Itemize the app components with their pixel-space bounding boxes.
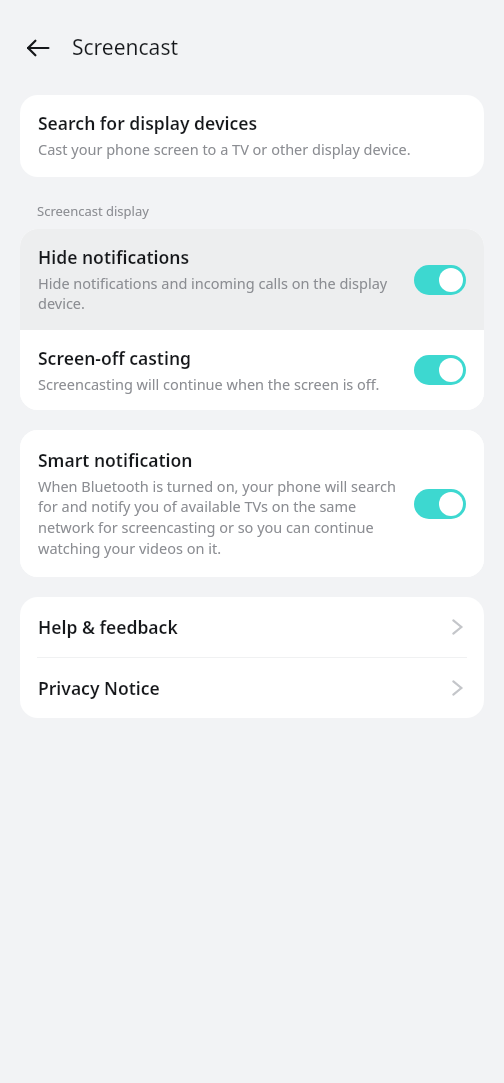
staticText: Smart notification (38, 448, 193, 472)
staticText: Privacy Notice (38, 676, 451, 700)
staticText: When Bluetooth is turned on, your phone … (38, 476, 400, 559)
button[interactable]: Help & feedback (20, 597, 484, 657)
staticText: Search for display devices (38, 111, 258, 135)
button[interactable]: Screen-off casting (20, 330, 484, 410)
button[interactable]: Privacy Notice (20, 658, 484, 718)
button[interactable]: Smart notification (20, 430, 484, 577)
staticText: Help & feedback (38, 615, 451, 639)
button[interactable]: Back (18, 28, 58, 68)
staticText: Screencasting will continue when the scr… (38, 374, 380, 394)
button[interactable]: Toggle (414, 355, 466, 385)
button[interactable]: Toggle (414, 489, 466, 519)
staticText: Screencast display (37, 202, 149, 220)
button[interactable]: Hide notifications (20, 229, 484, 330)
staticText: Cast your phone screen to a TV or other … (38, 139, 411, 159)
button[interactable]: Search for display devices (20, 95, 484, 177)
staticText: Screencast (72, 33, 179, 62)
staticText: Screen-off casting (38, 346, 192, 370)
staticText: Hide notifications (38, 245, 190, 269)
staticText: Hide notifications and incoming calls on… (38, 273, 400, 314)
button[interactable]: Toggle (414, 265, 466, 295)
